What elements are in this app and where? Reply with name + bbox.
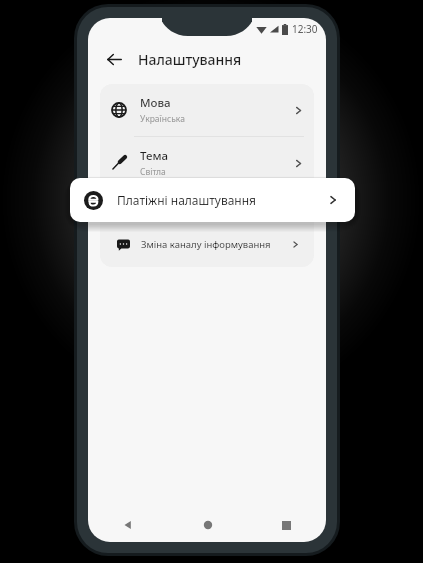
button[interactable]: Home <box>168 508 247 542</box>
staticText: Світла <box>140 166 166 178</box>
button[interactable]: Back <box>88 508 168 542</box>
button[interactable]: Recent apps <box>247 508 326 542</box>
staticText: Зміна каналу інформування <box>141 238 291 251</box>
staticText: Налаштування <box>138 50 242 69</box>
staticText: Платіжні налаштування <box>117 192 327 208</box>
button[interactable]: Платіжні налаштування <box>70 178 355 222</box>
button[interactable]: Back <box>100 45 128 73</box>
button[interactable]: Мова <box>100 84 314 136</box>
button[interactable]: Зміна каналу інформування <box>100 229 314 259</box>
button[interactable]: Тема <box>100 137 314 189</box>
staticText: Тема <box>140 148 169 164</box>
staticText: Українська <box>140 113 185 125</box>
staticText: 12:30 <box>292 22 318 36</box>
staticText: Мова <box>140 95 171 111</box>
